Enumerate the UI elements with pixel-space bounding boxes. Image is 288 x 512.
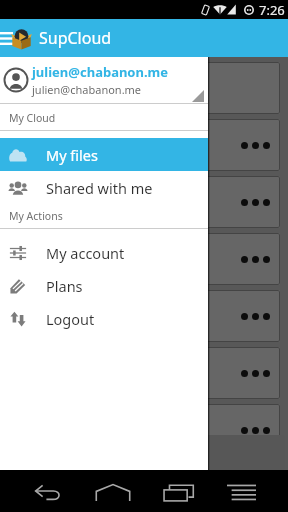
button[interactable]: Documentary (8, 62, 280, 114)
staticText: My account (46, 243, 125, 263)
staticText: SupCloud (39, 27, 112, 49)
button[interactable]: Work (8, 290, 280, 342)
staticText: Logout (46, 309, 95, 329)
staticText: Photos (18, 204, 61, 222)
staticText: julien@chabanon.me (32, 63, 169, 81)
button[interactable]: Logout (0, 302, 208, 335)
staticText: Documentary (18, 90, 102, 108)
staticText: julien@chabanon.me (32, 82, 142, 97)
button[interactable]: Photos (8, 176, 280, 228)
staticText: Plans (46, 276, 83, 296)
button[interactable]: Videos (8, 233, 280, 285)
button[interactable]: julien@chabanon.me (0, 57, 208, 103)
button[interactable]: Archive (8, 404, 280, 456)
button[interactable]: Shared with me (0, 171, 208, 204)
staticText: My Cloud (9, 111, 56, 125)
button[interactable]: Misc (8, 347, 280, 399)
staticText: Shared with me (46, 178, 153, 198)
staticText: My files (46, 145, 98, 165)
button[interactable]: My account (0, 236, 208, 269)
button[interactable]: Home (87, 470, 139, 512)
button[interactable]: Menu (215, 470, 267, 512)
staticText: Work (18, 318, 51, 336)
button[interactable]: My files (0, 138, 208, 171)
button[interactable]: Back (21, 470, 73, 512)
staticText: Music (18, 147, 54, 165)
button[interactable]: New folder (3, 435, 285, 470)
button[interactable]: Recents (153, 470, 205, 512)
staticText: My Actions (9, 209, 63, 223)
button[interactable]: Plans (0, 269, 208, 302)
staticText: 7:26 (259, 1, 285, 19)
button[interactable]: Open navigation drawer (0, 22, 21, 54)
button[interactable]: Music (8, 119, 280, 171)
